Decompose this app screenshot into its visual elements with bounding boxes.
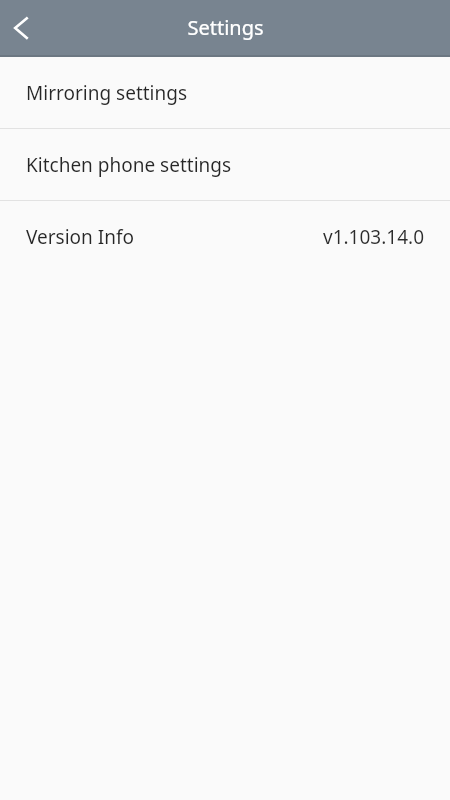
button[interactable]: Mirroring settings — [0, 57, 450, 128]
staticText: Kitchen phone settings — [26, 152, 232, 178]
staticText: v1.103.14.0 — [322, 224, 424, 250]
button[interactable]: Kitchen phone settings — [0, 129, 450, 200]
button[interactable]: Back — [0, 0, 44, 55]
staticText: Settings — [187, 14, 264, 41]
staticText: Version Info — [26, 224, 134, 250]
staticText: Mirroring settings — [26, 80, 188, 106]
button[interactable]: Version Info — [0, 201, 450, 272]
